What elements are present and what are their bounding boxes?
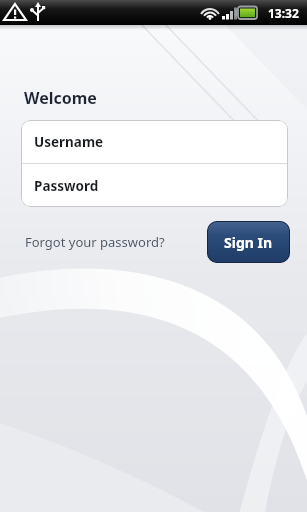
- button[interactable]: Forgot your password?: [25, 233, 165, 251]
- staticText: Welcome: [24, 87, 97, 109]
- button[interactable]: Password: [21, 164, 288, 207]
- staticText: Username: [34, 133, 104, 151]
- staticText: Password: [34, 177, 99, 195]
- staticText: 13:32: [268, 5, 299, 21]
- button[interactable]: Username: [21, 120, 288, 163]
- staticText: Forgot your password?: [25, 233, 165, 251]
- staticText: Sign In: [224, 233, 273, 252]
- button[interactable]: Sign In: [207, 221, 290, 263]
